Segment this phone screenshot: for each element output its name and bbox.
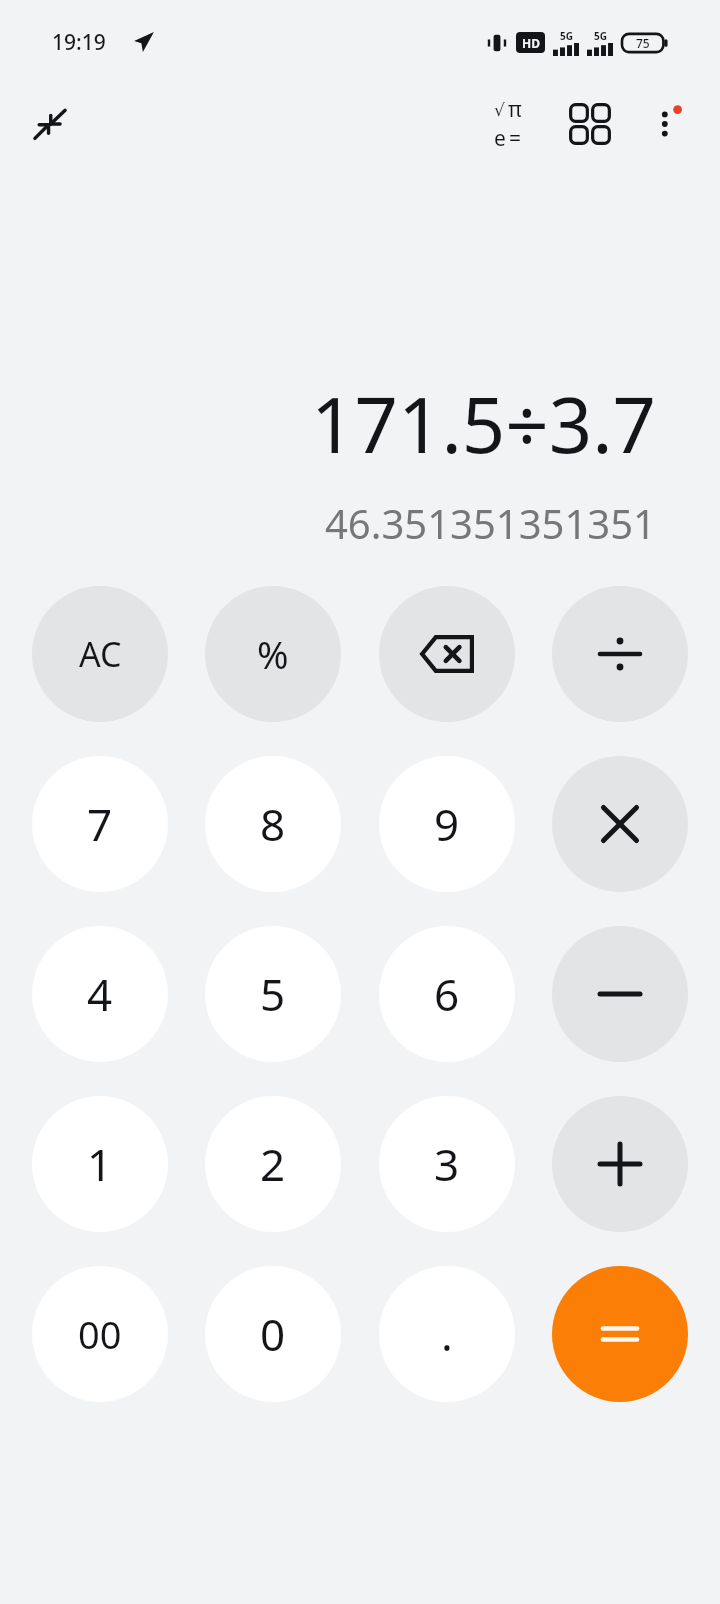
button[interactable]: Multiply xyxy=(552,756,688,892)
button[interactable]: Minus xyxy=(552,926,688,1062)
button[interactable]: 3 xyxy=(379,1096,515,1232)
staticText: = xyxy=(509,124,522,153)
staticText: 75 xyxy=(636,35,650,51)
staticText: 00 xyxy=(78,1308,122,1360)
staticText: e xyxy=(494,124,506,153)
button[interactable]: 9 xyxy=(379,756,515,892)
staticText: 0 xyxy=(260,1304,286,1364)
button[interactable]: . xyxy=(379,1266,515,1402)
staticText: 2 xyxy=(260,1134,286,1194)
staticText: 9 xyxy=(434,794,460,854)
staticText: 46.351351351351 xyxy=(0,496,656,550)
button[interactable]: 6 xyxy=(379,926,515,1062)
button[interactable]: Collapse xyxy=(20,94,80,154)
staticText: √ xyxy=(494,100,505,120)
staticText: 19:19 xyxy=(52,28,106,57)
button[interactable]: % xyxy=(205,586,341,722)
button[interactable]: 2 xyxy=(205,1096,341,1232)
staticText: 5 xyxy=(260,964,286,1024)
button[interactable]: 7 xyxy=(32,756,168,892)
staticText: 5G xyxy=(594,29,607,43)
staticText: 1 xyxy=(87,1134,113,1194)
button[interactable]: Unit converter xyxy=(554,88,626,160)
button[interactable]: 4 xyxy=(32,926,168,1062)
button[interactable]: Scientific mode xyxy=(472,88,544,160)
staticText: AC xyxy=(79,631,122,677)
button[interactable]: 1 xyxy=(32,1096,168,1232)
staticText: 171.5÷3.7 xyxy=(0,372,656,476)
button[interactable]: More options xyxy=(632,88,704,160)
button[interactable]: 5 xyxy=(205,926,341,1062)
button[interactable]: Plus xyxy=(552,1096,688,1232)
button[interactable]: 00 xyxy=(32,1266,168,1402)
staticText: 4 xyxy=(87,964,113,1024)
button[interactable]: 8 xyxy=(205,756,341,892)
staticText: % xyxy=(257,628,289,680)
button[interactable]: 0 xyxy=(205,1266,341,1402)
staticText: HD xyxy=(522,35,540,51)
staticText: π xyxy=(508,95,522,124)
staticText: . xyxy=(441,1304,453,1364)
staticText: 7 xyxy=(87,794,113,854)
staticText: 6 xyxy=(434,964,460,1024)
button[interactable]: Divide xyxy=(552,586,688,722)
button[interactable]: Backspace xyxy=(379,586,515,722)
staticText: 3 xyxy=(434,1134,460,1194)
button[interactable]: AC xyxy=(32,586,168,722)
button[interactable]: Equals xyxy=(552,1266,688,1402)
staticText: 8 xyxy=(260,794,286,854)
staticText: 5G xyxy=(560,29,573,43)
